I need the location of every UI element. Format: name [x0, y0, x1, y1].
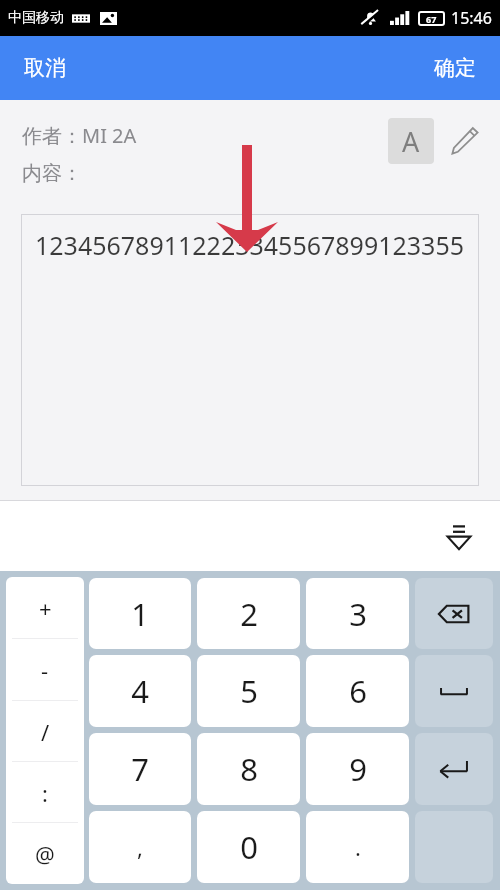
button[interactable]: Backspace — [415, 578, 493, 649]
staticText: 9 — [349, 748, 367, 790]
staticText: 取消 — [24, 55, 66, 81]
button[interactable]: : — [6, 762, 84, 823]
button[interactable]: 7 — [89, 733, 191, 805]
staticText: 3 — [349, 593, 367, 635]
staticText: 6 — [349, 670, 367, 712]
button[interactable]: 2 — [197, 578, 300, 649]
staticText: 8 — [240, 748, 258, 790]
button[interactable]: 1 — [89, 578, 191, 649]
staticText: 67 — [426, 13, 437, 25]
staticText: 7 — [131, 748, 149, 790]
button[interactable]: 取消 — [0, 36, 90, 100]
staticText: . — [355, 832, 361, 862]
staticText: 123456789112223345567899123355 — [35, 228, 465, 262]
button[interactable]: Font — [388, 118, 434, 164]
staticText: 2 — [240, 593, 258, 635]
staticText: 确定 — [434, 55, 476, 81]
button[interactable]: 8 — [197, 733, 300, 805]
staticText: 中国移动 — [8, 9, 64, 27]
button[interactable]: 5 — [197, 655, 300, 727]
button[interactable]: . — [306, 811, 409, 883]
staticText: 15:46 — [451, 7, 492, 29]
button[interactable]: Edit — [444, 120, 486, 162]
button[interactable]: Space — [415, 655, 493, 727]
staticText: : — [42, 778, 48, 808]
button[interactable]: @ — [6, 823, 84, 884]
button[interactable]: 3 — [306, 578, 409, 649]
staticText: , — [137, 832, 143, 862]
staticText: 1 — [131, 593, 149, 635]
staticText: A — [402, 123, 420, 160]
staticText: 5 — [240, 670, 258, 712]
staticText: @ — [35, 839, 55, 869]
staticText: - — [41, 655, 49, 685]
staticText: 作者：MI 2A — [22, 122, 137, 149]
button[interactable]: Enter — [415, 733, 493, 805]
button[interactable]: / — [6, 701, 84, 762]
button[interactable]: - — [6, 639, 84, 701]
button[interactable]: 9 — [306, 733, 409, 805]
button[interactable]: 6 — [306, 655, 409, 727]
button[interactable]: Hide keyboard — [436, 513, 482, 559]
staticText: 0 — [240, 826, 258, 868]
button[interactable]: 4 — [89, 655, 191, 727]
staticText: / — [41, 717, 50, 747]
button[interactable]: 0 — [197, 811, 300, 883]
staticText: 4 — [131, 670, 149, 712]
button[interactable]: 确定 — [410, 36, 500, 100]
button[interactable]: + — [6, 577, 84, 639]
button[interactable]: , — [89, 811, 191, 883]
staticText: + — [39, 593, 52, 623]
staticText: 内容： — [22, 161, 82, 186]
